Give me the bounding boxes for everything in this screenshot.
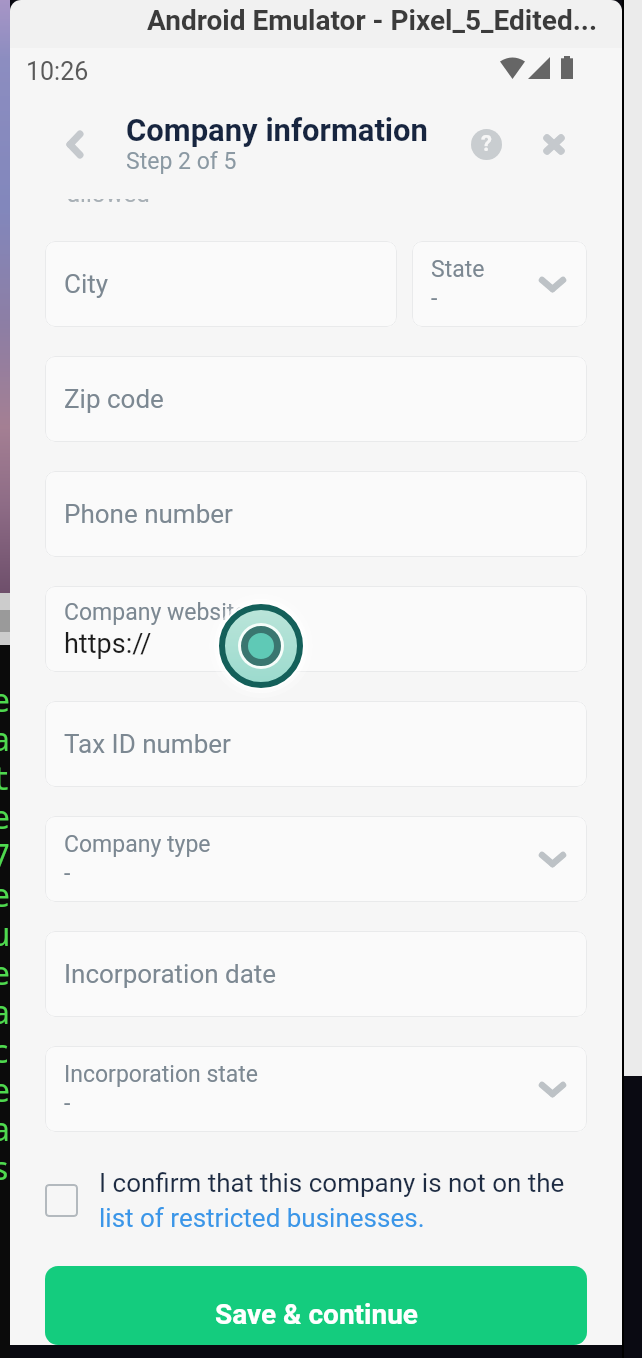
- staticText: State: [431, 256, 485, 283]
- staticText: allowed: [67, 199, 150, 202]
- staticText: t: [0, 756, 10, 795]
- staticText: Tax ID number: [64, 729, 231, 759]
- button[interactable]: Incorporation state: [45, 1046, 587, 1132]
- button[interactable]: Incorporation date: [45, 931, 587, 1017]
- staticText: e: [0, 678, 10, 717]
- staticText: Company type: [64, 831, 211, 858]
- button[interactable]: State: [412, 241, 587, 327]
- staticText: 7: [0, 834, 10, 873]
- staticText: Android Emulator - Pixel_5_Edited...: [147, 4, 598, 37]
- staticText: -: [431, 285, 438, 312]
- staticText: Zip code: [64, 384, 164, 414]
- button[interactable]: City: [45, 241, 397, 327]
- button[interactable]: Phone number: [45, 471, 587, 557]
- staticText: a: [0, 1107, 10, 1146]
- staticText: ?: [481, 131, 492, 157]
- staticText: Save & continue: [215, 1298, 418, 1331]
- staticText: Company website: [64, 599, 247, 626]
- staticText: list of restricted businesses.: [99, 1203, 425, 1233]
- button[interactable]: Company type: [45, 816, 587, 902]
- staticText: a: [0, 717, 10, 756]
- button[interactable]: Zip code: [45, 356, 587, 442]
- staticText: e: [0, 951, 10, 990]
- staticText: Phone number: [64, 499, 233, 529]
- staticText: I confirm that this company is not on th…: [99, 1168, 565, 1198]
- staticText: Step 2 of 5: [126, 148, 237, 175]
- staticText: -: [64, 860, 71, 887]
- staticText: https://: [64, 628, 152, 660]
- button[interactable]: Close: [526, 116, 582, 172]
- staticText: -: [64, 1090, 71, 1117]
- button[interactable]: Help: [458, 116, 514, 172]
- staticText: e: [0, 1068, 10, 1107]
- staticText: c: [0, 1029, 10, 1068]
- button[interactable]: Back: [43, 112, 107, 176]
- button[interactable]: Tax ID number: [45, 701, 587, 787]
- staticText: e: [0, 873, 10, 912]
- button[interactable]: Save & continue: [45, 1266, 587, 1345]
- staticText: Incorporation date: [64, 959, 277, 989]
- staticText: 10:26: [26, 57, 89, 86]
- button[interactable]: Company website: [45, 586, 587, 672]
- staticText: u: [0, 912, 10, 951]
- staticText: a: [0, 990, 10, 1029]
- staticText: s: [0, 1146, 10, 1185]
- button[interactable]: I confirm that this company is not on th…: [45, 1168, 587, 1233]
- staticText: Incorporation state: [64, 1061, 259, 1088]
- staticText: City: [64, 269, 109, 299]
- staticText: e: [0, 795, 10, 834]
- staticText: Company information: [126, 112, 428, 148]
